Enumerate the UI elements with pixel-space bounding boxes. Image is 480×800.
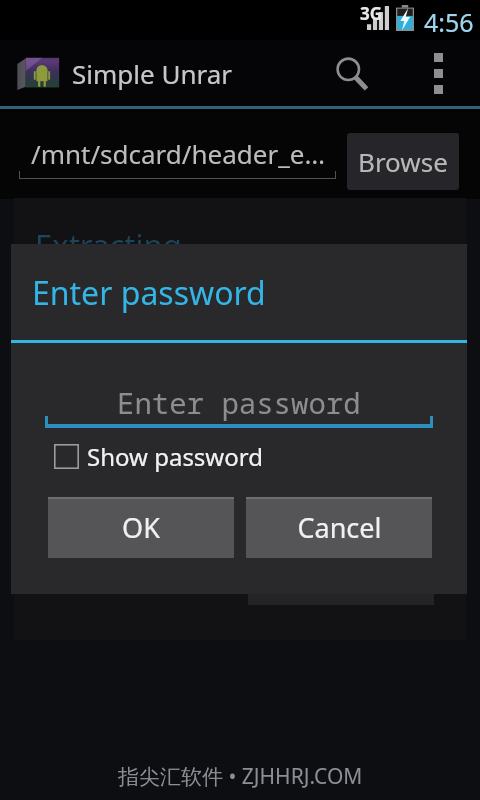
staticText: Enter password (32, 271, 266, 315)
staticText: Show password (87, 440, 263, 473)
button[interactable]: OK (48, 497, 234, 558)
button[interactable]: Search (308, 40, 396, 106)
staticText: Browse (358, 144, 448, 179)
staticText: 3G (360, 2, 383, 25)
staticText: OK (122, 509, 160, 546)
staticText: 指尖汇软件 • ZJHHRJ.COM (118, 762, 363, 791)
staticText: /mnt/sdcard/header_e… (31, 136, 325, 171)
button[interactable]: Browse (347, 133, 459, 190)
staticText: Extracting (35, 224, 182, 266)
staticText: Cancel (297, 509, 382, 546)
button[interactable]: Show password (54, 436, 263, 476)
button[interactable]: More options (396, 40, 480, 106)
button[interactable]: Cancel (246, 497, 432, 558)
staticText: Enter password (117, 383, 361, 422)
staticText: 4:56 (424, 5, 474, 39)
staticText: Simple Unrar (72, 56, 233, 91)
